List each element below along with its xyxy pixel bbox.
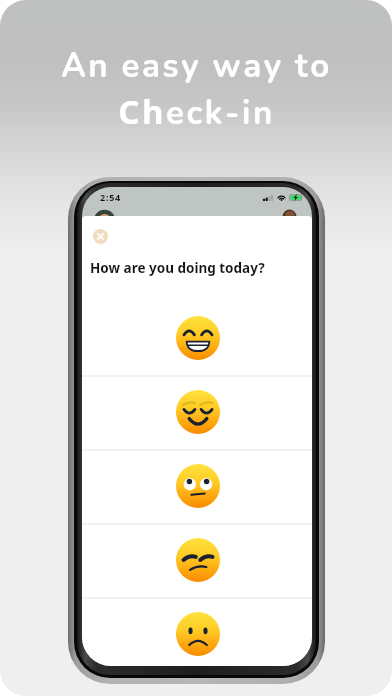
button[interactable]: Close <box>93 229 108 244</box>
button[interactable]: Mood option 4 <box>82 525 312 599</box>
staticText: Check-in <box>118 89 275 136</box>
button[interactable]: Mood option 3 <box>82 451 312 525</box>
staticText: How are you doing today? <box>90 259 265 277</box>
button[interactable]: Mood option 2 <box>82 377 312 451</box>
staticText: An easy way to <box>61 42 332 89</box>
button[interactable]: Mood option 1 <box>82 303 312 377</box>
staticText: 2:54 <box>100 191 121 203</box>
button[interactable]: Mood option 5 <box>82 599 312 666</box>
